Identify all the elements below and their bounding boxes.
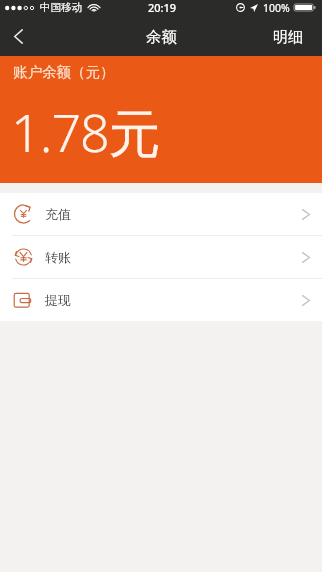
staticText: 100% xyxy=(263,1,290,15)
staticText: 余额 xyxy=(146,27,177,47)
button[interactable]: Back xyxy=(0,20,40,56)
staticText: 充值 xyxy=(45,206,71,222)
staticText: 中国移动 xyxy=(40,1,82,14)
button[interactable]: 明细 xyxy=(273,29,303,48)
button[interactable]: 提现 xyxy=(0,279,322,321)
staticText: 1.78元 xyxy=(11,96,160,167)
staticText: 转账 xyxy=(45,249,71,265)
staticText: 20:19 xyxy=(148,0,177,15)
button[interactable]: 充值 xyxy=(0,193,322,235)
staticText: 账户余额（元） xyxy=(13,63,115,81)
button[interactable]: 转账 xyxy=(0,236,322,278)
staticText: 明细 xyxy=(273,28,303,47)
staticText: 提现 xyxy=(45,292,71,308)
